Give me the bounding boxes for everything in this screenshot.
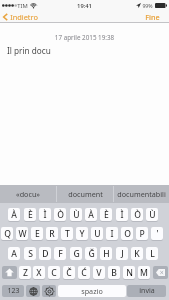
button[interactable]: E bbox=[31, 227, 43, 240]
staticText: Ù bbox=[73, 209, 80, 221]
button[interactable]: Ò bbox=[131, 208, 143, 221]
button[interactable]: R bbox=[46, 227, 58, 240]
button[interactable]: U bbox=[91, 227, 103, 240]
staticText: I bbox=[110, 228, 114, 240]
staticText: Y bbox=[79, 228, 85, 240]
button[interactable]: X bbox=[33, 266, 45, 279]
button[interactable]: Backspace bbox=[153, 266, 168, 279]
staticText: Ò bbox=[134, 209, 141, 221]
staticText: 19:41 bbox=[77, 2, 92, 10]
button[interactable]: À bbox=[85, 208, 97, 221]
staticText: Z bbox=[23, 267, 28, 279]
button[interactable]: H bbox=[100, 247, 112, 260]
staticText: P bbox=[139, 228, 145, 240]
staticText: Il prin docu bbox=[7, 45, 51, 56]
staticText: V bbox=[96, 267, 102, 279]
button[interactable]: Č bbox=[63, 266, 75, 279]
staticText: document bbox=[68, 189, 103, 199]
staticText: D bbox=[42, 248, 49, 260]
button[interactable]: Fine bbox=[140, 11, 169, 22]
staticText: B bbox=[111, 267, 117, 279]
button[interactable]: documentabili bbox=[113, 185, 169, 203]
button[interactable]: È bbox=[100, 208, 112, 221]
staticText: Q bbox=[4, 228, 11, 240]
staticText: G bbox=[73, 248, 80, 260]
button[interactable]: Y bbox=[76, 227, 88, 240]
button[interactable]: G bbox=[70, 247, 82, 260]
staticText: X bbox=[36, 267, 42, 279]
button[interactable]: Dictation bbox=[42, 285, 56, 297]
staticText: K bbox=[134, 248, 140, 260]
button[interactable]: Q bbox=[1, 227, 13, 240]
staticText: Indietro bbox=[10, 12, 38, 21]
staticText: E bbox=[35, 228, 40, 240]
staticText: J bbox=[121, 248, 124, 260]
staticText: 123 bbox=[7, 286, 20, 296]
staticText: W bbox=[18, 228, 27, 240]
button[interactable]: À bbox=[8, 208, 20, 221]
button[interactable]: A bbox=[8, 247, 20, 260]
staticText: 99% bbox=[142, 2, 153, 9]
staticText: N bbox=[126, 267, 133, 279]
staticText: spazio bbox=[81, 286, 103, 296]
button[interactable]: W bbox=[16, 227, 28, 240]
staticText: T bbox=[65, 228, 70, 240]
button[interactable]: ' bbox=[151, 227, 163, 240]
button[interactable]: P bbox=[136, 227, 148, 240]
button[interactable]: T bbox=[61, 227, 73, 240]
button[interactable]: Ğ bbox=[85, 247, 97, 260]
staticText: Ò bbox=[57, 209, 64, 221]
staticText: Ì bbox=[43, 209, 47, 221]
button[interactable]: L bbox=[146, 247, 158, 260]
button[interactable]: Ò bbox=[54, 208, 66, 221]
button[interactable]: Ć bbox=[78, 266, 90, 279]
button[interactable]: Ù bbox=[146, 208, 158, 221]
staticText: Ğ bbox=[88, 248, 95, 260]
button[interactable]: Change keyboard language bbox=[26, 285, 40, 297]
staticText: invia bbox=[139, 286, 155, 296]
staticText: Č bbox=[66, 267, 72, 279]
staticText: U bbox=[94, 228, 101, 240]
staticText: À bbox=[11, 209, 17, 221]
button[interactable]: F bbox=[54, 247, 66, 260]
button[interactable]: invia bbox=[127, 285, 166, 297]
button[interactable]: K bbox=[131, 247, 143, 260]
button[interactable]: Ù bbox=[70, 208, 82, 221]
staticText: «docu» bbox=[16, 189, 40, 199]
staticText: Ì bbox=[120, 209, 124, 221]
button[interactable]: Shift bbox=[2, 266, 17, 279]
button[interactable]: N bbox=[123, 266, 135, 279]
button[interactable]: O bbox=[121, 227, 133, 240]
button[interactable]: È bbox=[24, 208, 36, 221]
button[interactable]: I bbox=[106, 227, 118, 240]
button[interactable]: V bbox=[93, 266, 105, 279]
button[interactable]: «docu» bbox=[0, 185, 56, 203]
button[interactable]: J bbox=[116, 247, 128, 260]
button[interactable]: Z bbox=[19, 266, 31, 279]
button[interactable]: document bbox=[57, 185, 113, 203]
staticText: documentabili bbox=[117, 189, 166, 199]
staticText: Ć bbox=[81, 267, 87, 279]
staticText: 17 aprile 2015 19:38 bbox=[0, 33, 169, 42]
button[interactable]: D bbox=[39, 247, 51, 260]
staticText: Ù bbox=[149, 209, 156, 221]
staticText: ' bbox=[156, 228, 159, 240]
staticText: È bbox=[104, 209, 109, 221]
button[interactable]: S bbox=[24, 247, 36, 260]
staticText: O bbox=[124, 228, 131, 240]
staticText: TIM bbox=[17, 2, 28, 10]
staticText: È bbox=[28, 209, 33, 221]
staticText: R bbox=[49, 228, 55, 240]
staticText: M bbox=[140, 267, 148, 279]
button[interactable]: M bbox=[138, 266, 150, 279]
button[interactable]: Ì bbox=[116, 208, 128, 221]
button[interactable]: Ì bbox=[39, 208, 51, 221]
staticText: À bbox=[88, 209, 94, 221]
button[interactable]: spazio bbox=[58, 285, 126, 297]
button[interactable]: C bbox=[48, 266, 60, 279]
button[interactable]: Indietro bbox=[0, 11, 42, 22]
button[interactable]: B bbox=[108, 266, 120, 279]
staticText: S bbox=[28, 248, 33, 260]
button[interactable]: 123 bbox=[2, 285, 24, 297]
staticText: A bbox=[11, 248, 17, 260]
